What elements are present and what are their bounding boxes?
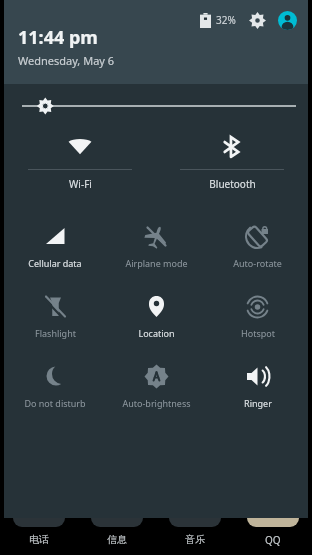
button[interactable]: Do not disturb (4, 348, 106, 418)
staticText: Hotspot (241, 327, 275, 339)
button[interactable]: Auto-brightness (106, 348, 207, 418)
button[interactable]: Auto-rotate (207, 208, 308, 278)
button[interactable]: 电话 (0, 518, 78, 555)
staticText: 11:44 pm (18, 25, 98, 50)
staticText: Flashlight (35, 327, 76, 339)
staticText: 电话 (29, 533, 49, 546)
button[interactable]: Airplane mode (106, 208, 207, 278)
staticText: Auto-brightness (122, 397, 191, 409)
button[interactable]: Settings (246, 9, 268, 31)
staticText: 32% (216, 13, 236, 27)
staticText: QQ (265, 533, 281, 547)
staticText: Do not disturb (24, 397, 86, 409)
button[interactable]: Location (106, 278, 207, 348)
staticText: 音乐 (185, 533, 205, 546)
staticText: Auto-rotate (233, 257, 282, 269)
staticText: 信息 (107, 533, 127, 546)
staticText: Bluetooth (209, 177, 256, 191)
button[interactable]: User profile (276, 9, 298, 31)
button[interactable]: Hotspot (207, 278, 308, 348)
button[interactable]: 信息 (78, 518, 156, 555)
button[interactable]: 音乐 (156, 518, 234, 555)
button[interactable]: Bluetooth (156, 132, 308, 194)
button[interactable]: Flashlight (4, 278, 106, 348)
staticText: Airplane mode (125, 257, 188, 269)
staticText: Location (138, 327, 175, 339)
button[interactable]: Ringer (207, 348, 308, 418)
staticText: Wi-Fi (69, 177, 92, 191)
button[interactable]: Brightness (4, 88, 308, 124)
button[interactable]: QQ (234, 518, 312, 555)
button[interactable]: Cellular data (4, 208, 106, 278)
staticText: Wednesday, May 6 (18, 53, 115, 68)
staticText: Cellular data (28, 257, 82, 269)
staticText: Ringer (244, 397, 272, 409)
button[interactable]: Wi-Fi (4, 132, 156, 194)
